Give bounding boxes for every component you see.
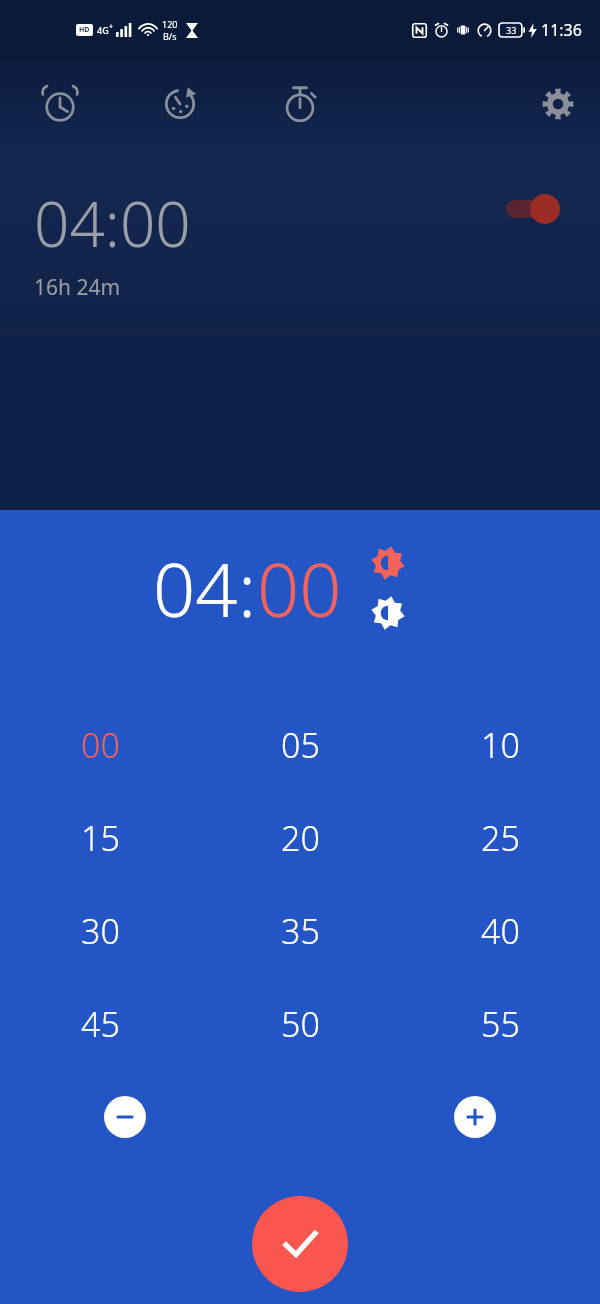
staticText: 55	[481, 1001, 520, 1047]
staticText: 25	[481, 815, 520, 861]
button[interactable]: 10	[400, 698, 600, 791]
staticText: 05	[281, 722, 320, 768]
button[interactable]: 40	[400, 884, 600, 977]
staticText: B/s	[163, 30, 177, 42]
button[interactable]: Confirm	[252, 1196, 348, 1292]
button[interactable]: 04:00	[0, 148, 600, 334]
staticText: +	[109, 22, 114, 32]
staticText: HD	[79, 25, 90, 35]
staticText: 00	[257, 538, 342, 638]
button[interactable]: Timer	[120, 74, 240, 134]
staticText: 00	[81, 722, 120, 768]
button[interactable]: 04	[153, 538, 238, 638]
button[interactable]: 35	[200, 884, 400, 977]
button[interactable]: Stopwatch	[240, 74, 360, 134]
button[interactable]: 15	[0, 791, 200, 884]
button[interactable]: 00	[0, 698, 200, 791]
staticText: 04	[153, 538, 238, 638]
button[interactable]: 00	[257, 538, 342, 638]
button[interactable]: Increase	[454, 1096, 496, 1138]
button[interactable]: Settings	[526, 72, 590, 136]
button[interactable]: Decrease	[104, 1096, 146, 1138]
staticText: 11:36	[541, 19, 582, 41]
button[interactable]: 25	[400, 791, 600, 884]
staticText: 33	[506, 24, 517, 36]
staticText: :	[238, 538, 257, 638]
staticText: 30	[81, 908, 120, 954]
staticText: 40	[481, 908, 520, 954]
button[interactable]: PM	[368, 593, 408, 633]
staticText: 10	[481, 722, 520, 768]
staticText: 35	[281, 908, 320, 954]
button[interactable]: Alarm enabled	[498, 189, 574, 229]
button[interactable]: 30	[0, 884, 200, 977]
button[interactable]: Alarm	[0, 74, 120, 134]
staticText: 50	[281, 1001, 320, 1047]
button[interactable]: 50	[200, 977, 400, 1070]
staticText: 04:00	[34, 181, 191, 265]
staticText: 45	[81, 1001, 120, 1047]
staticText: 4G	[97, 24, 109, 36]
button[interactable]: 20	[200, 791, 400, 884]
button[interactable]: AM	[368, 543, 408, 583]
staticText: 120	[162, 18, 178, 30]
staticText: 20	[281, 815, 320, 861]
button[interactable]: 55	[400, 977, 600, 1070]
button[interactable]: 05	[200, 698, 400, 791]
staticText: 15	[81, 815, 120, 861]
staticText: 16h 24m	[34, 273, 121, 302]
button[interactable]: 45	[0, 977, 200, 1070]
